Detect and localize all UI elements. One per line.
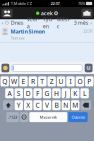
- button[interactable]: 3 měs: [72, 19, 90, 26]
- staticText: Martin Simon: [10, 28, 44, 35]
- button[interactable]: S: [15, 88, 23, 98]
- button[interactable]: Send: [68, 112, 88, 122]
- staticText: C: [36, 101, 40, 110]
- button[interactable]: C: [33, 100, 42, 110]
- staticText: F: [36, 89, 39, 98]
- button[interactable]: Měsíc: [55, 19, 72, 26]
- staticText: Dnes: [11, 19, 24, 26]
- button[interactable]: Space: [29, 112, 67, 122]
- staticText: 22:37: [83, 28, 92, 33]
- button[interactable]: H: [52, 88, 61, 98]
- button[interactable]: Z: [47, 76, 56, 86]
- staticText: 76%: [78, 1, 85, 6]
- button[interactable]: M: [71, 100, 79, 110]
- button[interactable]: E: [19, 76, 28, 86]
- button[interactable]: P: [85, 76, 93, 86]
- button[interactable]: Delete: [80, 100, 91, 110]
- staticText: J: [65, 89, 67, 98]
- button[interactable]: F: [33, 88, 42, 98]
- staticText: B: [54, 101, 58, 110]
- staticText: T-Mobile CZ: [10, 1, 32, 6]
- staticText: D: [26, 89, 31, 98]
- button[interactable]: Týden: [41, 19, 55, 26]
- staticText: .?123: [8, 114, 17, 120]
- button[interactable]: Send options: [85, 64, 92, 72]
- staticText: Text xxx: [10, 35, 24, 41]
- staticText: I: [69, 77, 71, 86]
- button[interactable]: I: [66, 76, 75, 86]
- button[interactable]: A: [5, 88, 14, 98]
- staticText: 22:37: [50, 1, 59, 6]
- button[interactable]: T: [38, 76, 46, 86]
- staticText: Z: [50, 77, 54, 86]
- button[interactable]: B: [52, 100, 61, 110]
- staticText: Mezerník: [40, 114, 57, 120]
- button[interactable]: X: [24, 100, 32, 110]
- button[interactable]: acek: [36, 10, 58, 17]
- button[interactable]: K: [71, 88, 79, 98]
- staticText: L: [83, 89, 86, 98]
- staticText: V: [45, 101, 49, 110]
- staticText: M: [72, 101, 78, 110]
- staticText: X: [26, 101, 30, 110]
- staticText: Odeslat: [71, 114, 84, 120]
- button[interactable]: V: [43, 100, 51, 110]
- button[interactable]: O: [76, 76, 84, 86]
- button[interactable]: Q: [0, 76, 9, 86]
- staticText: T: [40, 77, 44, 86]
- staticText: W: [11, 77, 17, 86]
- button[interactable]: Numbers: [6, 112, 19, 122]
- button[interactable]: Včera: [25, 19, 41, 26]
- button[interactable]: N: [62, 100, 70, 110]
- staticText: Týden: [43, 16, 54, 30]
- button[interactable]: D: [24, 88, 32, 98]
- button[interactable]: Dnes: [9, 19, 25, 26]
- staticText: ‹: [2, 19, 4, 26]
- staticText: Q: [2, 77, 7, 86]
- button[interactable]: J: [62, 88, 70, 98]
- button[interactable]: G: [43, 88, 51, 98]
- staticText: ›: [90, 19, 92, 26]
- staticText: A: [7, 89, 11, 98]
- staticText: H: [54, 89, 59, 98]
- button[interactable]: Emoticons: [1, 64, 9, 72]
- staticText: G: [44, 89, 49, 98]
- staticText: O: [77, 77, 82, 86]
- staticText: acek: [41, 10, 53, 17]
- staticText: P: [87, 77, 91, 86]
- button[interactable]: W: [10, 76, 18, 86]
- button[interactable]: Shift: [3, 100, 14, 110]
- staticText: Y: [17, 101, 21, 110]
- button[interactable]: Martin Simon: [0, 26, 94, 42]
- staticText: R: [31, 77, 35, 86]
- staticText: K: [73, 89, 77, 98]
- staticText: U: [59, 77, 64, 86]
- button[interactable]: New message: [81, 9, 92, 18]
- button[interactable]: L: [80, 88, 89, 98]
- button[interactable]: Contacts: [2, 9, 13, 18]
- staticText: N: [63, 101, 68, 110]
- staticText: E: [21, 77, 25, 86]
- staticText: Včera: [27, 16, 40, 30]
- staticText: 3 měs: [74, 19, 89, 26]
- staticText: Měsíc: [57, 16, 71, 30]
- button[interactable]: Next keyboard: [20, 112, 28, 122]
- button[interactable]: R: [29, 76, 37, 86]
- button[interactable]: Y: [15, 100, 23, 110]
- button[interactable]: U: [57, 76, 65, 86]
- staticText: S: [17, 89, 21, 98]
